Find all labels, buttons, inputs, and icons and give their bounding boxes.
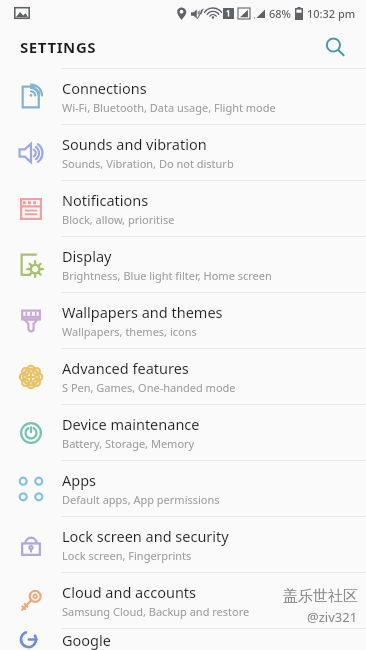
button[interactable]: Apps <box>0 461 366 516</box>
staticText: Display <box>62 246 112 266</box>
staticText: Sounds and vibration <box>62 134 207 154</box>
staticText: Wi-Fi, Bluetooth, Data usage, Flight mod… <box>62 100 276 115</box>
staticText: Wallpapers, themes, icons <box>62 324 197 339</box>
button[interactable]: Cloud and accounts <box>0 573 366 628</box>
button[interactable]: Wallpapers and themes <box>0 293 366 348</box>
button[interactable]: Google <box>0 629 366 650</box>
button[interactable]: Notifications <box>0 181 366 236</box>
staticText: 68% <box>269 6 291 21</box>
staticText: Default apps, App permissions <box>62 492 220 507</box>
button[interactable]: Lock screen and security <box>0 517 366 572</box>
staticText: SETTINGS <box>20 37 97 57</box>
staticText: Apps <box>62 470 97 490</box>
staticText: Device maintenance <box>62 414 200 434</box>
staticText: Brightness, Blue light filter, Home scre… <box>62 268 272 283</box>
staticText: Advanced features <box>62 358 189 378</box>
staticText: Connections <box>62 78 147 98</box>
staticText: Google <box>62 630 111 650</box>
button[interactable]: Search <box>318 30 352 64</box>
staticText: Lock screen and security <box>62 526 229 546</box>
staticText: Battery, Storage, Memory <box>62 436 195 451</box>
button[interactable]: Display <box>0 237 366 292</box>
staticText: Cloud and accounts <box>62 582 197 602</box>
staticText: Lock screen, Fingerprints <box>62 548 192 563</box>
button[interactable]: Sounds and vibration <box>0 125 366 180</box>
button[interactable]: Device maintenance <box>0 405 366 460</box>
button[interactable]: Advanced features <box>0 349 366 404</box>
staticText: @ziv321 <box>307 608 358 626</box>
staticText: Samsung Cloud, Backup and restore <box>62 604 250 619</box>
staticText: 盖乐世社区 <box>283 587 358 606</box>
staticText: 10:32 pm <box>307 6 356 21</box>
staticText: Notifications <box>62 190 149 210</box>
staticText: Block, allow, prioritise <box>62 212 175 227</box>
staticText: Wallpapers and themes <box>62 302 223 322</box>
button[interactable]: Connections <box>0 69 366 124</box>
staticText: S Pen, Games, One-handed mode <box>62 380 236 395</box>
staticText: Sounds, Vibration, Do not disturb <box>62 156 234 171</box>
